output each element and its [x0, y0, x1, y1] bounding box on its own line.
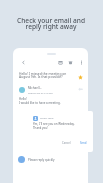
button[interactable]: Delete: [68, 60, 73, 65]
staticText: Hello!: [19, 97, 27, 101]
button[interactable]: Back: [21, 60, 26, 65]
staticText: Smart reply: [40, 116, 54, 119]
staticText: Hello! I missed the meeting on August 9t…: [19, 71, 79, 79]
staticText: I would like to have a meeting.: [19, 101, 61, 105]
staticText: Please reply quickly: [28, 158, 55, 162]
staticText: Cancel: [62, 141, 71, 145]
staticText: Michael L.: [28, 86, 42, 90]
button[interactable]: Archive: [58, 60, 63, 65]
staticText: Check your email and reply right away: [0, 16, 102, 31]
button[interactable]: Send: [78, 140, 89, 146]
staticText: Yes, I'll see you on Wednesday. Thank yo…: [33, 122, 75, 130]
button[interactable]: More options: [79, 60, 84, 65]
staticText: august 9th at 3:10 pm: [28, 91, 53, 94]
button[interactable]: Reply: [78, 87, 83, 92]
button[interactable]: Cancel: [60, 140, 73, 146]
staticText: Send: [80, 141, 87, 145]
button[interactable]: Star: [78, 75, 83, 80]
